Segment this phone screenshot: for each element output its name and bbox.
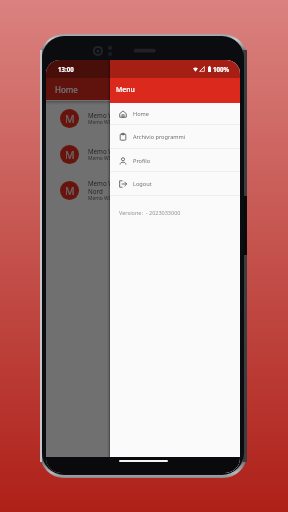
button[interactable]: Home xyxy=(110,103,240,125)
staticText: 13:00 xyxy=(58,65,74,73)
staticText: Versione: - 2023033000 xyxy=(119,209,181,216)
other: Archive xyxy=(119,133,127,141)
staticText: Home xyxy=(55,84,78,95)
staticText: Memo WIND Tre S.p.A. Italia xyxy=(88,155,153,162)
other: Logout xyxy=(119,180,127,188)
staticText: Memo WIND Tre S.p.A. xyxy=(88,111,154,119)
other: Home xyxy=(119,110,127,118)
staticText: M xyxy=(65,148,75,162)
button[interactable]: Profile xyxy=(110,149,240,172)
button[interactable]: Logout xyxy=(110,172,240,196)
staticText: Memo WIND Tre S.p.A. Nord xyxy=(88,179,154,195)
staticText: Menu xyxy=(116,85,135,94)
button[interactable]: Archive xyxy=(110,125,240,149)
button[interactable]: M xyxy=(46,100,240,136)
button[interactable]: M xyxy=(46,172,240,208)
other: Profile xyxy=(119,157,127,165)
staticText: Profilo xyxy=(133,157,151,165)
staticText: M xyxy=(65,112,75,126)
staticText: Home xyxy=(133,110,149,118)
staticText: Logout xyxy=(133,180,152,188)
staticText: 100% xyxy=(213,65,230,73)
staticText: M xyxy=(65,184,75,198)
button[interactable]: M xyxy=(46,136,240,172)
staticText: Memo WIND Tre S.p.A. Italia xyxy=(88,195,153,202)
staticText: Memo WIND Tre S.p.A. Italia xyxy=(88,119,153,126)
staticText: Archivio programmi xyxy=(133,133,186,141)
staticText: Memo WIND Tre S.p.A. xyxy=(88,147,154,155)
